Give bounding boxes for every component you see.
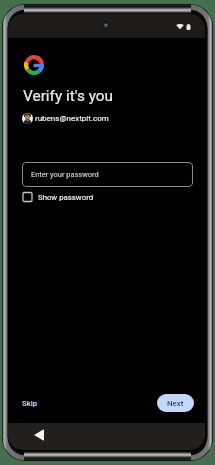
- button[interactable]: Back: [29, 425, 49, 445]
- staticText: rubens@nextpit.com: [35, 114, 109, 123]
- button[interactable]: Enter your password: [22, 162, 193, 187]
- staticText: Show password: [38, 193, 94, 202]
- staticText: Enter your password: [31, 170, 99, 179]
- button[interactable]: Skip: [16, 392, 44, 414]
- button[interactable]: Show password: [20, 189, 94, 205]
- staticText: Skip: [22, 399, 38, 408]
- button[interactable]: Next: [157, 394, 194, 412]
- staticText: Next: [167, 399, 184, 408]
- staticText: Verify it's you: [23, 87, 114, 105]
